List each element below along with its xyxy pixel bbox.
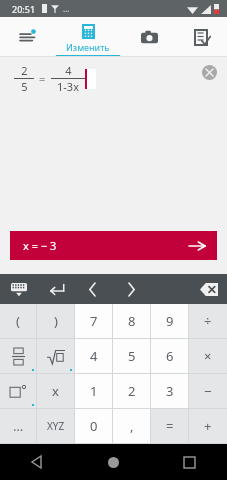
button[interactable]: + [189, 409, 227, 443]
staticText: 9 [166, 312, 174, 330]
button[interactable]: 2 [113, 374, 150, 408]
staticText: … [13, 417, 24, 435]
button[interactable]: 0 [75, 409, 112, 443]
button[interactable]: ( [0, 304, 36, 338]
staticText: 20:51 [12, 3, 36, 15]
staticText: 8 [128, 312, 136, 330]
button[interactable]: Hide keyboard [0, 274, 38, 304]
staticText: 1 [90, 382, 98, 400]
button[interactable]: Back [0, 444, 75, 480]
staticText: , [130, 417, 134, 435]
button[interactable]: x = − 3 [10, 231, 217, 260]
button[interactable]: − [189, 374, 227, 408]
button[interactable]: SQ [0, 374, 36, 408]
button[interactable]: x [37, 374, 74, 408]
button[interactable]: 7 [75, 304, 112, 338]
staticText: ... [63, 3, 70, 14]
staticText: x [52, 382, 59, 400]
button[interactable]: Menu [0, 17, 53, 57]
staticText: + [204, 417, 212, 435]
staticText: 7 [90, 312, 98, 330]
staticText: 6 [166, 347, 174, 365]
staticText: 4 [65, 63, 72, 78]
button[interactable]: Изменить [53, 17, 123, 57]
button[interactable]: FRAC [0, 339, 36, 373]
button[interactable]: 4 [75, 339, 112, 373]
button[interactable]: Backspace [190, 274, 227, 304]
staticText: = [166, 417, 174, 435]
staticText: × [204, 347, 212, 365]
staticText: 5 [128, 347, 136, 365]
staticText: 2 [128, 382, 136, 400]
staticText: Изменить [66, 41, 110, 53]
button[interactable]: Recents [151, 444, 227, 480]
button[interactable]: … [0, 409, 36, 443]
button[interactable]: Clear [202, 65, 217, 80]
button[interactable]: Home [75, 444, 151, 480]
staticText: = [39, 71, 46, 86]
button[interactable]: Enter [38, 274, 75, 304]
button[interactable]: 6 [151, 339, 188, 373]
button[interactable]: SQRT [37, 339, 74, 373]
button[interactable]: Left [75, 274, 112, 304]
staticText: 1-3x [57, 79, 79, 94]
button[interactable]: 8 [113, 304, 150, 338]
staticText: 5 [21, 79, 28, 94]
staticText: ÷ [204, 312, 212, 330]
button[interactable]: ÷ [189, 304, 227, 338]
button[interactable]: , [113, 409, 150, 443]
staticText: x = − 3 [23, 238, 57, 253]
button[interactable]: = [151, 409, 188, 443]
staticText: 3 [166, 382, 174, 400]
staticText: ) [54, 312, 58, 330]
staticText: 0 [90, 417, 98, 435]
button[interactable]: × [189, 339, 227, 373]
button[interactable]: 3 [151, 374, 188, 408]
staticText: ( [16, 312, 20, 330]
button[interactable]: ) [37, 304, 74, 338]
button[interactable]: 9 [151, 304, 188, 338]
staticText: − [204, 382, 212, 400]
other: Next [189, 238, 205, 254]
staticText: 2 [21, 63, 28, 78]
staticText: XYZ [47, 419, 65, 433]
staticText: 4 [90, 347, 98, 365]
button[interactable]: 1 [75, 374, 112, 408]
button[interactable]: Camera [123, 17, 175, 57]
button[interactable]: XYZ [37, 409, 74, 443]
button[interactable]: Right [112, 274, 149, 304]
button[interactable]: 5 [113, 339, 150, 373]
button[interactable]: Solutions [175, 17, 227, 57]
